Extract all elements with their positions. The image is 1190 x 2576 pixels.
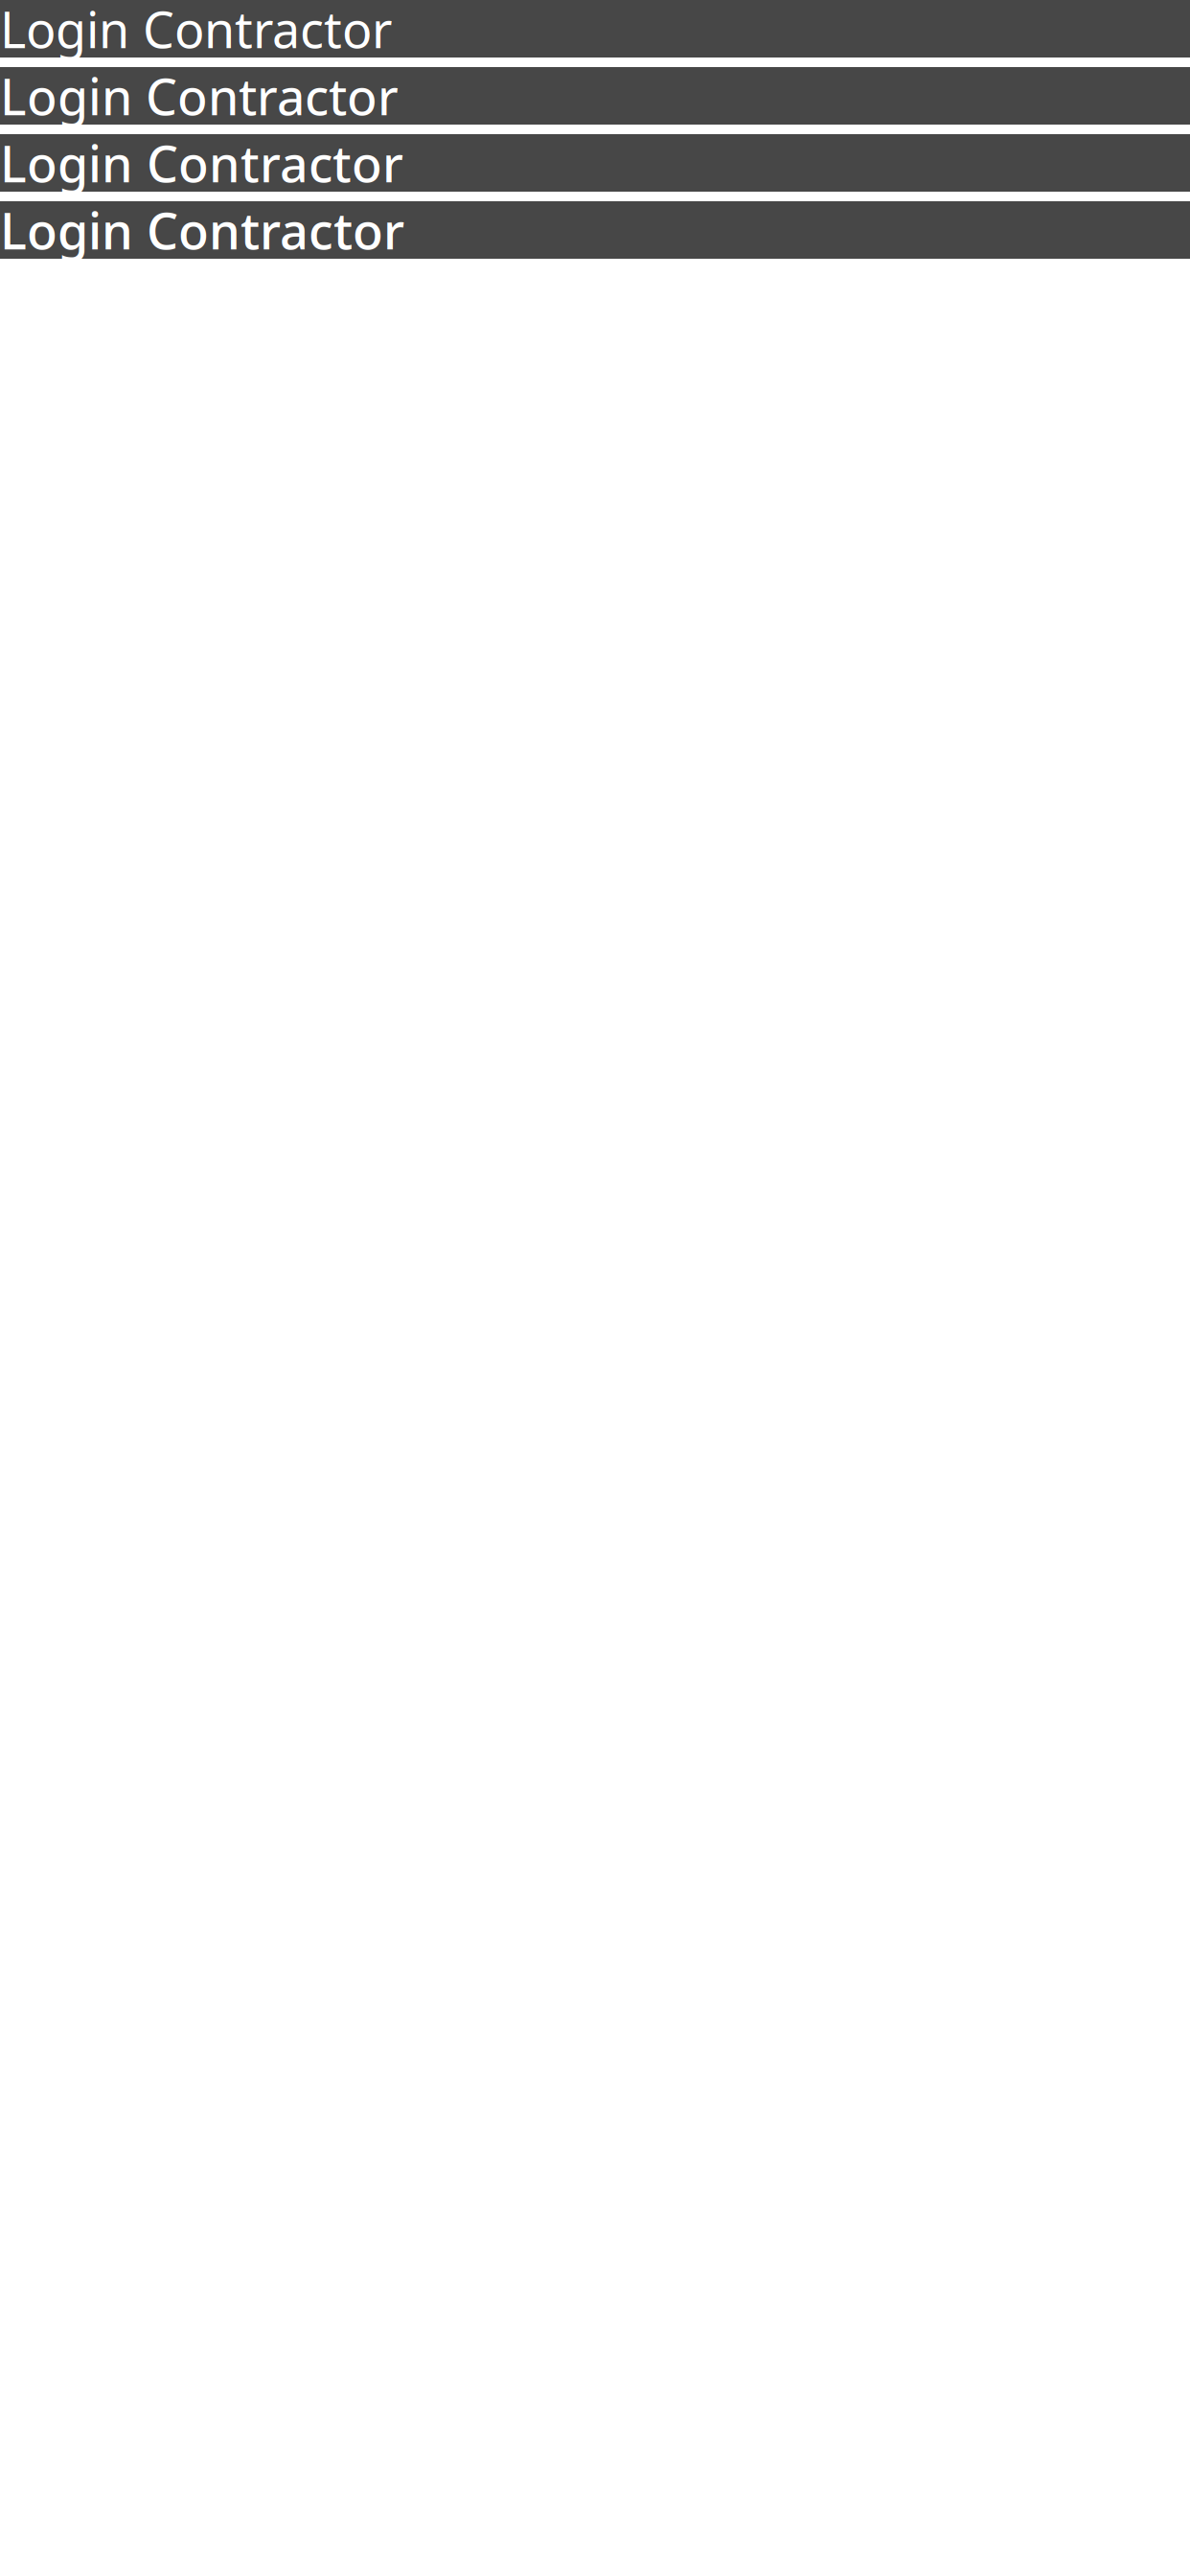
staticText: Login Contractor (0, 129, 403, 197)
staticText: Login Contractor (0, 0, 392, 62)
staticText: Login Contractor (0, 62, 399, 130)
staticText: Login Contractor (0, 196, 404, 264)
